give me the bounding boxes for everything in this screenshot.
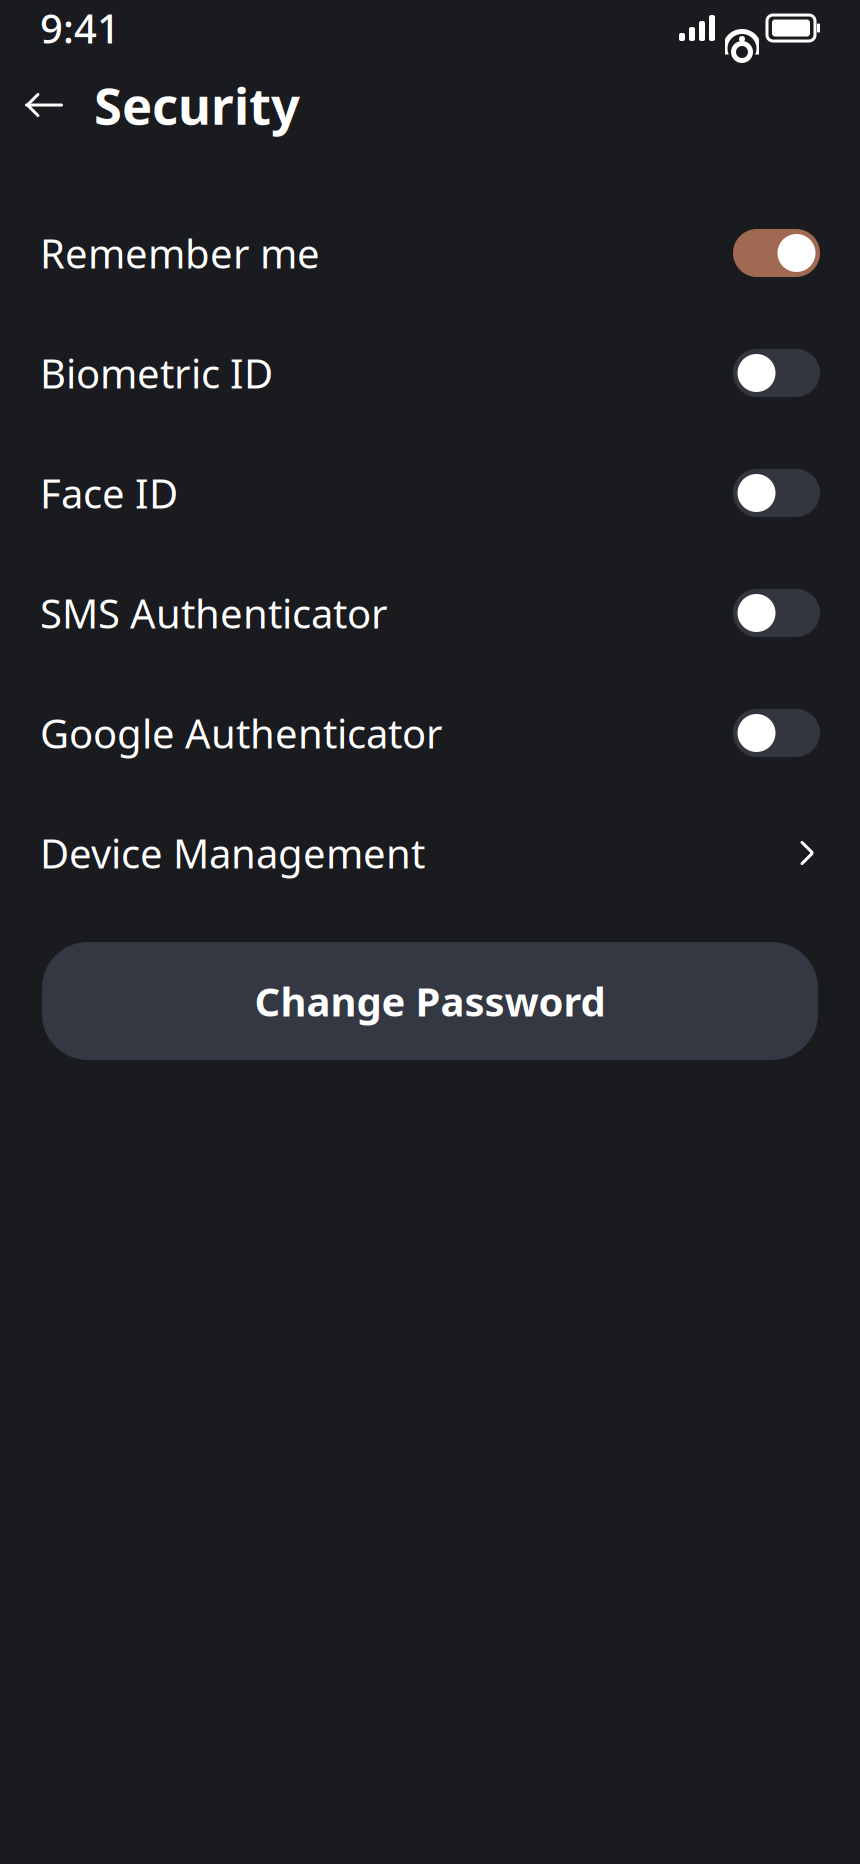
staticText: Remember me [40,226,320,279]
staticText: Device Management [40,826,425,879]
staticText: Security [94,71,300,139]
button[interactable]: Google Authenticator [0,673,860,793]
button[interactable]: Device Management [0,793,860,913]
staticText: SMS Authenticator [40,586,388,639]
staticText: Google Authenticator [40,706,443,759]
staticText: Biometric ID [40,346,273,399]
button[interactable]: Biometric ID [0,313,860,433]
staticText: Change Password [254,974,605,1027]
button[interactable]: Face ID [0,433,860,553]
staticText: 9:41 [40,1,120,54]
button[interactable]: Back [0,75,66,135]
staticText: Face ID [40,466,178,519]
button[interactable]: Remember me [0,193,860,313]
button[interactable]: SMS Authenticator [0,553,860,673]
button[interactable]: Change Password [42,942,818,1060]
